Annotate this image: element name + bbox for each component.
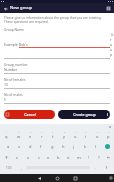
button[interactable]: 2 (13, 129, 24, 140)
button[interactable]: j (69, 141, 79, 151)
button[interactable]: f (36, 141, 46, 151)
staticText: v (47, 155, 50, 160)
button[interactable]: Voice input (100, 163, 113, 172)
button[interactable]: , (17, 163, 25, 172)
staticText: z (16, 155, 18, 160)
staticText: f (40, 144, 42, 149)
button[interactable]: v (44, 152, 53, 162)
staticText: , (21, 165, 22, 170)
button[interactable]: Back (2, 5, 9, 12)
staticText: i (85, 134, 87, 139)
button[interactable]: h (58, 141, 68, 151)
staticText: w (17, 134, 21, 139)
staticText: 5 (4, 97, 6, 102)
button[interactable]: 4 (37, 129, 47, 140)
staticText: s (18, 144, 20, 149)
staticText: New group (10, 5, 33, 11)
button[interactable]: Backspace (104, 152, 113, 162)
button[interactable]: 5 (48, 129, 58, 140)
button[interactable]: 3 (25, 129, 36, 140)
button[interactable]: ?123 (1, 163, 16, 172)
button[interactable]: x (23, 152, 33, 162)
button[interactable]: 1 (1, 129, 12, 140)
button[interactable]: Create group (58, 110, 110, 119)
staticText: k (84, 144, 87, 149)
button[interactable]: Number (4, 67, 110, 72)
button[interactable]: s (14, 141, 24, 151)
staticText: ? (98, 155, 100, 160)
button[interactable]: 8 (81, 129, 91, 140)
staticText: Create group (73, 112, 96, 117)
button[interactable]: 7 (70, 129, 80, 140)
button[interactable]: Enter (102, 141, 113, 151)
staticText: Bob's (19, 42, 28, 47)
button[interactable]: k (80, 141, 90, 151)
staticText: l (95, 144, 97, 149)
staticText: b (57, 155, 60, 160)
staticText: Group_number (4, 62, 28, 66)
button[interactable]: a (4, 141, 13, 151)
button[interactable]: Example (4, 32, 110, 57)
staticText: 2 (18, 131, 20, 134)
button[interactable]: 5 (4, 97, 110, 102)
staticText: j (73, 144, 75, 149)
staticText: 10 (4, 82, 8, 87)
button[interactable]: 0 (103, 129, 113, 140)
staticText: 1 (6, 131, 8, 134)
staticText: 0 (108, 131, 110, 134)
staticText: y (63, 134, 66, 139)
staticText: r (41, 134, 43, 139)
staticText: h (62, 144, 65, 149)
button[interactable]: n (64, 152, 73, 162)
staticText: Group Name (4, 27, 24, 31)
staticText: 4 (41, 131, 43, 134)
button[interactable]: m (74, 152, 83, 162)
staticText: c (38, 155, 40, 160)
staticText: e (29, 134, 32, 139)
staticText: Please give us information about the gro… (4, 16, 110, 24)
staticText: No of males (4, 92, 23, 96)
button[interactable]: Cancel (4, 110, 55, 119)
staticText: n (67, 155, 70, 160)
staticText: m (77, 155, 81, 160)
button[interactable]: z (12, 152, 22, 162)
staticText: 6 (64, 131, 66, 134)
button[interactable]: d (25, 141, 35, 151)
staticText: 9 (97, 131, 99, 134)
button[interactable]: 6 (59, 129, 69, 140)
staticText: ! (88, 155, 90, 160)
staticText: Cancel (24, 112, 36, 117)
staticText: u (74, 134, 77, 139)
staticText: g (51, 144, 54, 149)
staticText: a (7, 144, 10, 149)
staticText: p (107, 134, 110, 139)
button[interactable]: Menu (105, 5, 112, 12)
staticText: Example (4, 42, 19, 47)
button[interactable]: 10 (4, 82, 110, 87)
button[interactable]: Shift (1, 152, 11, 162)
button[interactable]: b (54, 152, 63, 162)
staticText: x (27, 155, 30, 160)
button[interactable]: Back (34, 174, 44, 182)
button[interactable]: 9 (92, 129, 102, 140)
button[interactable]: g (47, 141, 57, 151)
staticText: ?123 (6, 166, 12, 170)
staticText: Number (4, 67, 18, 72)
button[interactable]: ? (94, 152, 103, 162)
staticText: q (5, 134, 8, 139)
staticText: o (96, 134, 99, 139)
staticText: No of females (4, 77, 26, 81)
staticText: 5 (52, 131, 54, 134)
button[interactable]: c (34, 152, 43, 162)
staticText: 8 (85, 131, 87, 134)
button[interactable]: ! (84, 152, 93, 162)
staticText: t (52, 134, 54, 139)
staticText: 7 (75, 131, 77, 134)
button[interactable]: Recents (70, 174, 80, 182)
button[interactable]: Home (52, 174, 62, 182)
staticText: d (29, 144, 32, 149)
button[interactable]: l (91, 141, 101, 151)
